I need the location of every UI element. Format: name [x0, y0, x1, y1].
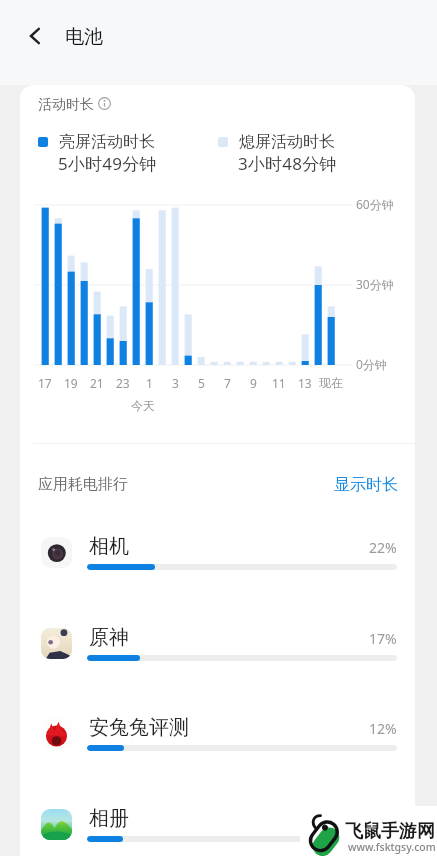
- staticText: 原神: [89, 625, 129, 650]
- staticText: 12%: [369, 810, 397, 829]
- staticText: 21: [90, 375, 104, 391]
- button[interactable]: 原神: [20, 606, 415, 696]
- staticText: 相机: [89, 534, 129, 559]
- staticText: 19: [64, 375, 78, 391]
- button[interactable]: 相册: [20, 787, 415, 856]
- staticText: 13: [298, 375, 312, 391]
- staticText: 7: [224, 375, 231, 391]
- staticText: 3小时48分钟: [238, 152, 337, 175]
- staticText: 1: [146, 375, 153, 391]
- staticText: 显示时长: [334, 475, 398, 495]
- staticText: 应用耗电排行: [38, 475, 128, 494]
- staticText: 电池: [65, 25, 103, 49]
- staticText: 30分钟: [356, 276, 394, 292]
- staticText: 安兔兔评测: [89, 715, 189, 740]
- staticText: 11: [272, 375, 286, 391]
- staticText: 17: [38, 375, 52, 391]
- staticText: 5: [198, 375, 205, 391]
- staticText: www.fsktgsy.com: [348, 840, 436, 854]
- button[interactable]: 显示时长: [330, 471, 402, 499]
- staticText: 现在: [319, 375, 343, 390]
- button[interactable]: Back: [13, 14, 57, 58]
- staticText: 3: [172, 375, 179, 391]
- staticText: 飞鼠手游网: [345, 820, 435, 843]
- staticText: 12%: [369, 719, 397, 738]
- staticText: 60分钟: [356, 196, 394, 212]
- staticText: 熄屏活动时长: [239, 132, 335, 152]
- staticText: 亮屏活动时长: [59, 132, 155, 152]
- staticText: 17%: [369, 629, 397, 648]
- staticText: 0分钟: [356, 356, 387, 372]
- staticText: 22%: [369, 538, 397, 557]
- button[interactable]: 相机: [20, 515, 415, 605]
- staticText: 9: [250, 375, 257, 391]
- staticText: 今天: [131, 398, 155, 413]
- staticText: 23: [116, 375, 130, 391]
- button[interactable]: 安兔兔评测: [20, 696, 415, 786]
- staticText: 5小时49分钟: [58, 152, 157, 175]
- staticText: 活动时长: [38, 96, 94, 114]
- staticText: 相册: [89, 806, 129, 831]
